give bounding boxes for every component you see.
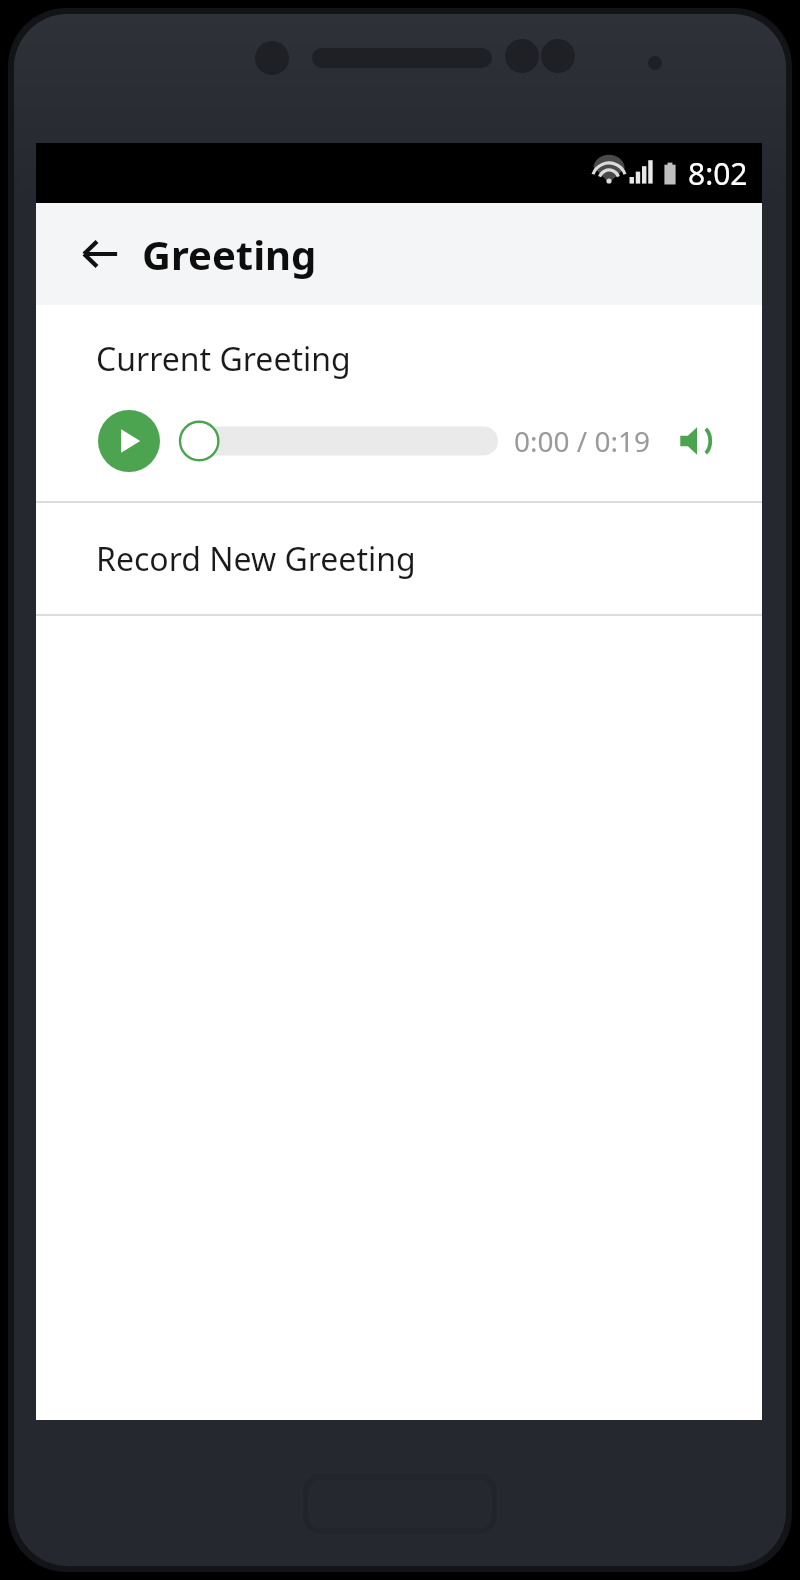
button[interactable]: Seek position (178, 417, 498, 465)
button[interactable]: Record New Greeting (36, 503, 762, 614)
button[interactable]: Play (98, 410, 160, 472)
staticText: 0:00 / 0:19 (514, 422, 651, 460)
button[interactable]: Back (72, 226, 128, 282)
staticText: 8:02 (688, 153, 748, 194)
staticText: Greeting (142, 227, 317, 281)
button[interactable]: Volume (671, 415, 723, 467)
staticText: Record New Greeting (96, 537, 416, 581)
staticText: Current Greeting (96, 337, 351, 381)
